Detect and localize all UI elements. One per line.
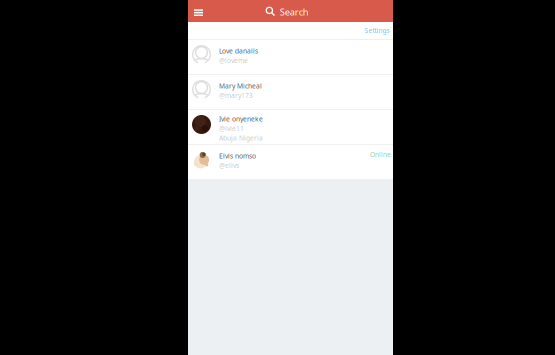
button[interactable]: Ivie onyeneke bbox=[188, 110, 393, 144]
staticText: @ivie11 bbox=[219, 124, 244, 133]
button[interactable]: Elvis nomso bbox=[188, 145, 393, 179]
staticText: Abuja Nigeria bbox=[219, 134, 263, 142]
button[interactable]: Search bbox=[260, 2, 315, 22]
staticText: @elivs bbox=[219, 161, 239, 170]
staticText: Love danails bbox=[219, 46, 258, 55]
staticText: @mary173 bbox=[219, 91, 253, 100]
staticText: Online bbox=[370, 150, 391, 159]
button[interactable]: Settings bbox=[356, 22, 393, 39]
button[interactable]: Menu bbox=[188, 3, 209, 22]
staticText: Mary Micheal bbox=[219, 81, 262, 90]
staticText: Ivie onyeneke bbox=[219, 114, 263, 123]
staticText: @loveme bbox=[219, 56, 248, 65]
button[interactable]: Mary Micheal bbox=[188, 75, 393, 109]
staticText: Elvis nomso bbox=[219, 151, 256, 160]
button[interactable]: Love danails bbox=[188, 40, 393, 74]
staticText: Search bbox=[280, 6, 309, 18]
staticText: Settings bbox=[364, 26, 389, 35]
